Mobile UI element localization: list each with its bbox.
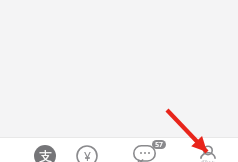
button[interactable]: Messages, 57 unread <box>122 138 168 162</box>
staticText: 支 <box>39 148 52 162</box>
staticText: 我的 <box>201 159 215 162</box>
button[interactable]: Profile <box>185 138 231 162</box>
staticText: ¥ <box>84 148 91 162</box>
button[interactable]: Money <box>64 138 110 162</box>
staticText: 57 <box>155 140 163 149</box>
button[interactable]: Pay <box>22 138 68 162</box>
